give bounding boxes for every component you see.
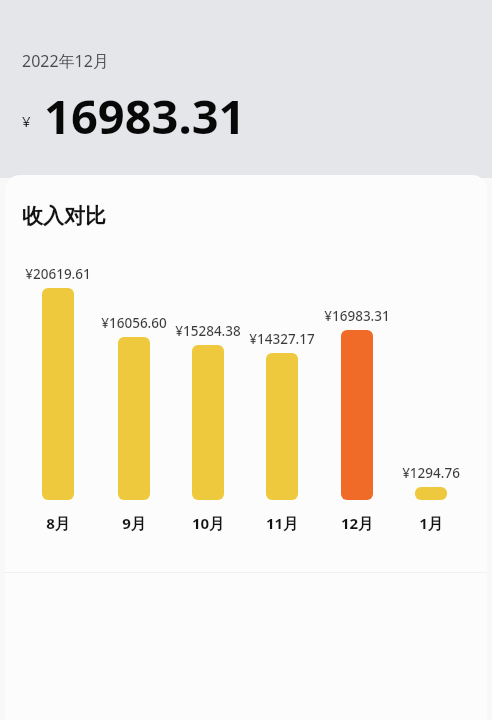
staticText: 10月: [168, 513, 248, 533]
staticText: ¥16983.31: [300, 307, 414, 325]
button[interactable]: 12月 ¥16983.31: [341, 330, 373, 500]
staticText: 8月: [18, 513, 98, 533]
staticText: 2022年12月: [22, 50, 109, 72]
button[interactable]: 11月 ¥14327.17: [266, 353, 298, 500]
staticText: 1月: [391, 513, 471, 533]
staticText: 12月: [317, 513, 397, 533]
staticText: ¥1294.76: [374, 464, 487, 482]
staticText: 收入对比: [22, 203, 106, 229]
button[interactable]: 9月 ¥16056.60: [118, 337, 150, 500]
button[interactable]: 10月 ¥15284.38: [192, 345, 224, 500]
staticText: ¥15284.38: [151, 322, 265, 340]
staticText: ¥16056.60: [77, 314, 191, 332]
button[interactable]: 8月 ¥20619.61: [42, 288, 74, 500]
button[interactable]: 收入对比: [5, 175, 487, 720]
staticText: 9月: [94, 513, 174, 533]
staticText: ¥: [22, 111, 31, 131]
staticText: ¥20619.61: [5, 265, 115, 283]
staticText: 16983.31: [44, 84, 246, 148]
button[interactable]: 1月 ¥1294.76: [415, 487, 447, 500]
staticText: ¥14327.17: [225, 330, 339, 348]
staticText: 11月: [242, 513, 322, 533]
